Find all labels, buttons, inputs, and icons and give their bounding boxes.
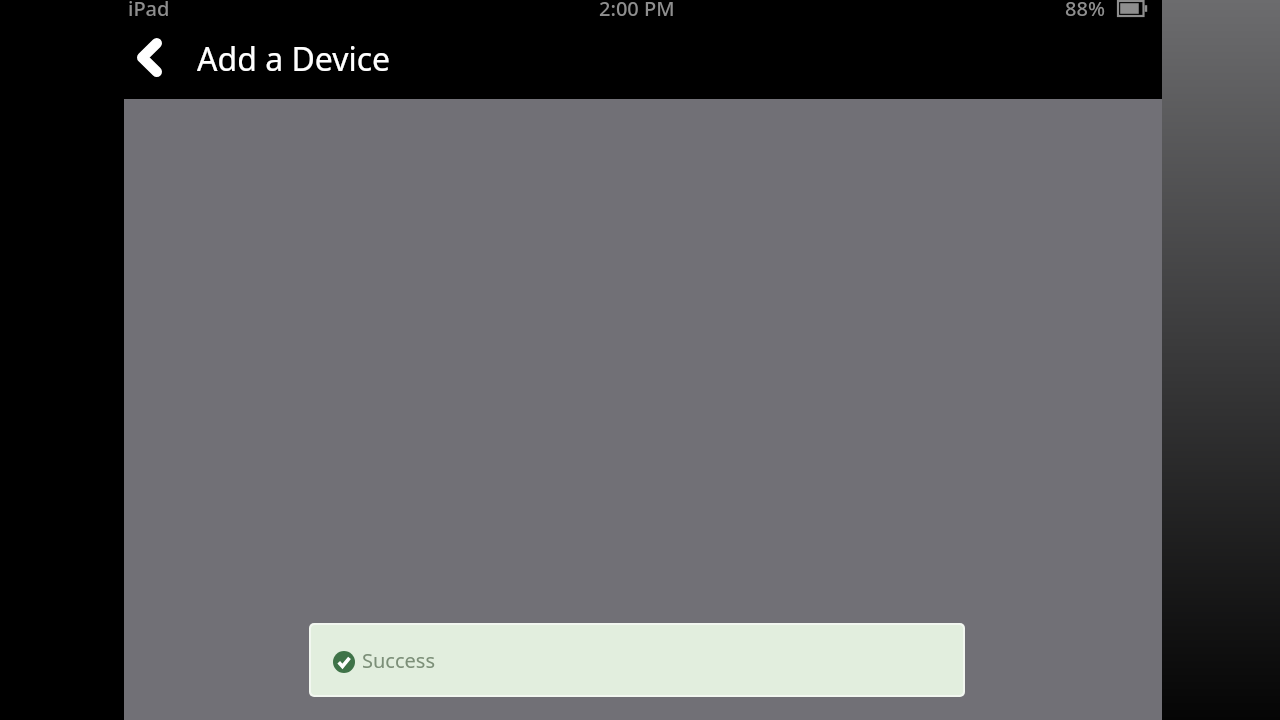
staticText: iPad xyxy=(128,0,170,22)
staticText: 2:00 PM xyxy=(599,0,675,22)
staticText: Add a Device xyxy=(197,37,391,81)
staticText: Success xyxy=(362,647,435,674)
button[interactable]: Back xyxy=(118,26,180,88)
staticText: 88% xyxy=(1065,0,1105,22)
button[interactable]: Success xyxy=(311,625,963,695)
